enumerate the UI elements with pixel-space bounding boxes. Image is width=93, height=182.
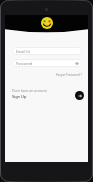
staticText: Password: [16, 61, 33, 66]
button[interactable]: Email Id: [12, 47, 82, 55]
button[interactable]: Forgot Password ?: [56, 73, 82, 77]
staticText: Dont have an account: [12, 88, 47, 93]
staticText: Email Id: [16, 49, 30, 54]
button[interactable]: Continue: [75, 91, 84, 100]
button[interactable]: Sign Up: [12, 94, 27, 99]
button[interactable]: Password: [12, 59, 82, 67]
